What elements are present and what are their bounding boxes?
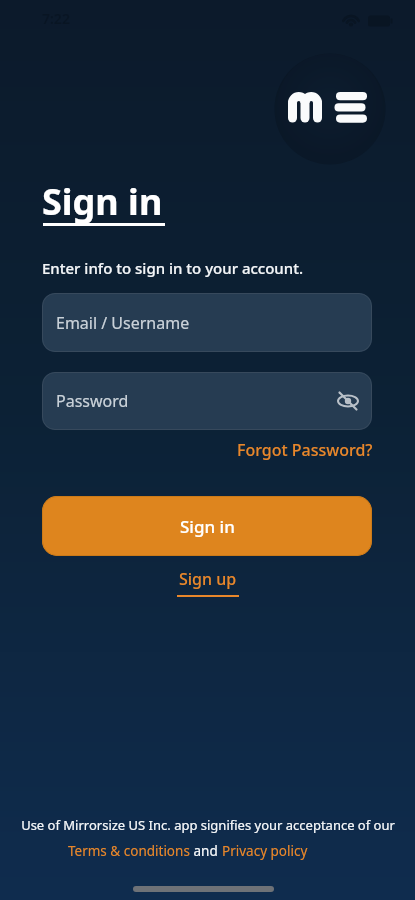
staticText: and: [190, 842, 222, 860]
button[interactable]: Terms & conditions: [68, 842, 190, 860]
staticText: Use of Mirrorsize US Inc. app signifies …: [21, 816, 395, 834]
staticText: Sign in: [42, 177, 163, 226]
button[interactable]: Forgot Password?: [237, 439, 373, 461]
button[interactable]: Email / Username: [42, 293, 372, 352]
button[interactable]: Sign up: [177, 568, 239, 597]
staticText: Sign in: [180, 515, 235, 538]
staticText: Email / Username: [56, 312, 190, 334]
staticText: Password: [56, 390, 129, 412]
staticText: Sign up: [179, 568, 237, 590]
staticText: Enter info to sign in to your account.: [42, 258, 304, 278]
button[interactable]: Sign in: [42, 496, 372, 556]
button[interactable]: Password: [42, 372, 372, 430]
button[interactable]: Privacy policy: [222, 842, 308, 860]
